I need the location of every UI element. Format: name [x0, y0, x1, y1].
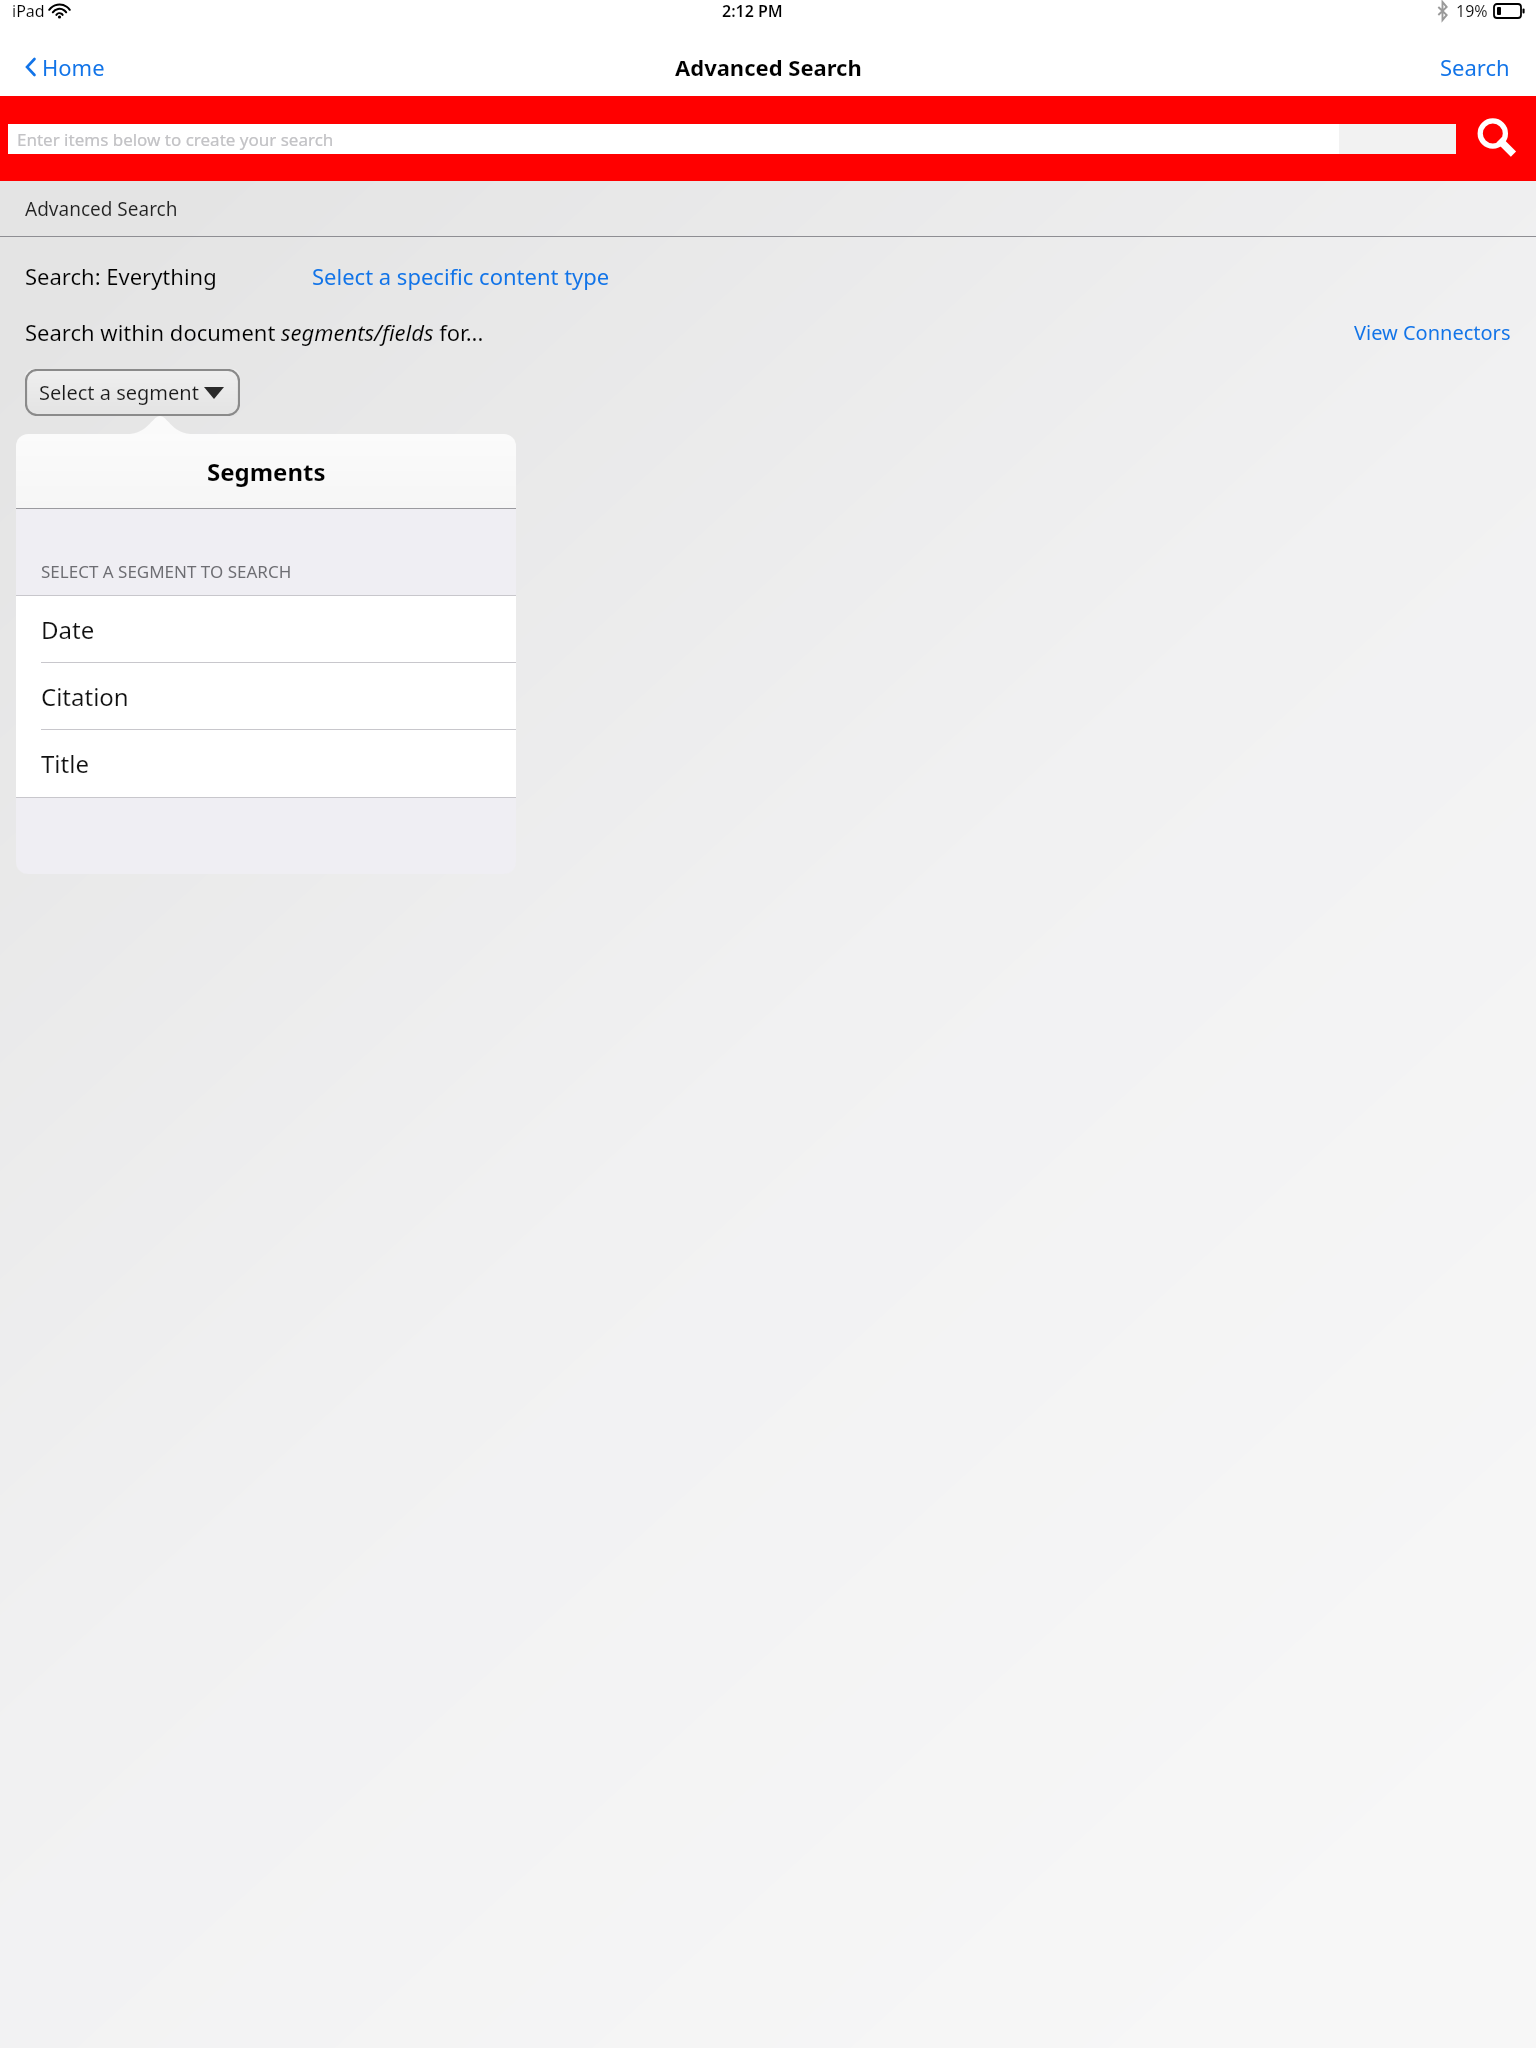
button[interactable]: Select a segment — [25, 369, 240, 416]
staticText: Segments — [207, 455, 326, 488]
button[interactable]: Citation — [16, 663, 516, 730]
button[interactable]: Title — [16, 730, 516, 797]
staticText: Search within document segments/fields f… — [25, 317, 484, 347]
button[interactable]: View Connectors — [1354, 319, 1511, 346]
staticText: 2:12 PM — [722, 0, 783, 22]
button[interactable]: Date — [16, 596, 516, 663]
staticText: Advanced Search — [675, 52, 862, 82]
staticText: Search: Everything — [25, 261, 217, 291]
staticText: Select a specific content type — [312, 261, 610, 291]
staticText: Select a segment — [39, 379, 199, 406]
staticText: Citation — [41, 680, 129, 713]
staticText: Enter items below to create your search — [17, 128, 334, 151]
staticText: Home — [42, 52, 105, 82]
staticText: Advanced Search — [25, 196, 178, 222]
button[interactable]: Search — [1476, 118, 1518, 160]
button[interactable]: Home — [18, 46, 113, 88]
staticText: iPad — [12, 0, 45, 22]
staticText: SELECT A SEGMENT TO SEARCH — [41, 560, 292, 583]
staticText: Title — [41, 747, 89, 780]
staticText: 19% — [1456, 0, 1488, 22]
button[interactable]: Select a specific content type — [312, 261, 610, 291]
button[interactable]: Enter items below to create your search — [8, 124, 1339, 154]
staticText: Date — [41, 613, 95, 646]
staticText: View Connectors — [1354, 319, 1511, 346]
staticText: Search — [1440, 52, 1510, 82]
button[interactable]: Search — [1434, 46, 1516, 88]
